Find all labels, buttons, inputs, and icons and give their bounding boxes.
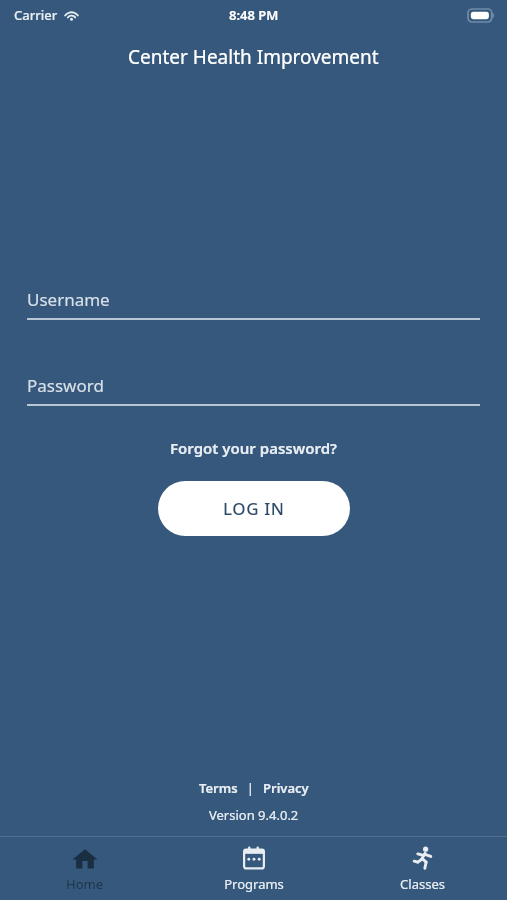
button[interactable]: Programs <box>169 837 338 900</box>
button[interactable]: Username <box>0 288 507 320</box>
button[interactable]: Classes <box>338 837 507 900</box>
staticText: Username <box>27 288 110 311</box>
staticText: | <box>240 779 261 797</box>
button[interactable]: Forgot your password? <box>158 434 349 462</box>
staticText: Classes <box>400 875 445 893</box>
button[interactable]: Privacy <box>261 779 311 797</box>
staticText: Home <box>66 875 103 893</box>
staticText: Forgot your password? <box>170 438 337 458</box>
staticText: LOG IN <box>223 497 285 520</box>
staticText: Terms <box>199 779 238 797</box>
button[interactable]: Home <box>0 837 169 900</box>
staticText: Version 9.4.0.2 <box>209 806 299 824</box>
staticText: 8:48 PM <box>229 6 279 24</box>
staticText: Carrier <box>14 6 58 24</box>
button[interactable]: Password <box>0 374 507 406</box>
staticText: Privacy <box>263 779 309 797</box>
staticText: Programs <box>224 875 284 893</box>
button[interactable]: Terms <box>197 779 240 797</box>
button[interactable]: LOG IN <box>158 481 350 536</box>
staticText: Password <box>27 374 104 397</box>
staticText: Center Health Improvement <box>128 44 379 70</box>
